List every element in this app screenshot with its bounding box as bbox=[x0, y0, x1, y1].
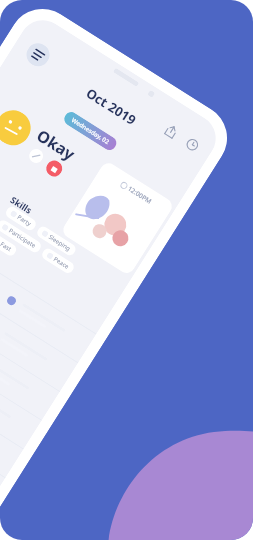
button[interactable]: Edit bbox=[26, 146, 46, 166]
button[interactable]: Delete bbox=[43, 157, 65, 180]
button[interactable]: History bbox=[179, 131, 206, 158]
staticText: Party bbox=[16, 213, 33, 228]
staticText: Wednesday, 02 bbox=[70, 116, 111, 146]
staticText: Okay bbox=[32, 124, 80, 165]
button[interactable]: Menu bbox=[22, 39, 54, 71]
staticText: Oct 2019 bbox=[83, 84, 140, 129]
staticText: Peace bbox=[52, 255, 71, 271]
staticText: 12:00PM bbox=[126, 184, 154, 206]
staticText: Skills bbox=[8, 193, 35, 216]
staticText: Participate bbox=[7, 227, 38, 250]
button[interactable]: Participate bbox=[0, 218, 43, 254]
button[interactable]: Wednesday, 02 bbox=[62, 109, 119, 153]
button[interactable]: Sleeping bbox=[35, 224, 78, 257]
button[interactable]: Fast bbox=[0, 232, 18, 258]
staticText: Sleeping bbox=[47, 233, 72, 253]
staticText: Fast bbox=[0, 240, 13, 253]
button[interactable]: Party bbox=[4, 205, 38, 232]
button[interactable]: Peace bbox=[40, 246, 76, 275]
button[interactable]: Share bbox=[157, 117, 185, 145]
